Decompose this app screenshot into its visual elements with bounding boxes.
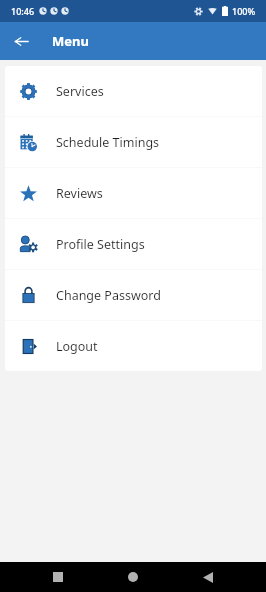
staticText: Menu (52, 32, 89, 50)
button[interactable]: Services (5, 66, 262, 116)
button[interactable]: Recents (41, 562, 75, 592)
button[interactable]: Logout (5, 321, 262, 371)
staticText: Reviews (56, 185, 103, 202)
button[interactable]: Profile Settings (5, 219, 262, 269)
button[interactable]: Change Password (5, 270, 262, 320)
button[interactable]: Back (0, 22, 42, 60)
staticText: Profile Settings (56, 236, 145, 253)
staticText: Change Password (56, 287, 161, 304)
button[interactable]: Reviews (5, 168, 262, 218)
staticText: 100% (232, 5, 256, 17)
button[interactable]: Back (191, 562, 225, 592)
staticText: Schedule Timings (56, 134, 160, 151)
button[interactable]: Home (116, 562, 150, 592)
staticText: Logout (56, 338, 98, 355)
staticText: 10:46 (11, 5, 35, 17)
button[interactable]: Schedule Timings (5, 117, 262, 167)
staticText: Services (56, 83, 104, 100)
